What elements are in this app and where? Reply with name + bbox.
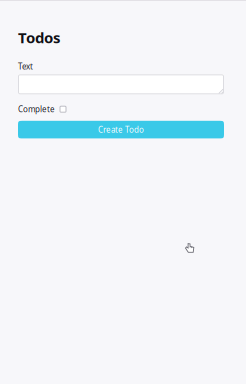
staticText: Create Todo bbox=[98, 124, 144, 135]
staticText: Text bbox=[18, 61, 33, 72]
button[interactable]: Create Todo bbox=[18, 121, 224, 138]
staticText: Todos bbox=[18, 27, 60, 48]
button[interactable]: Complete bbox=[18, 104, 66, 115]
staticText: Complete bbox=[18, 104, 55, 115]
